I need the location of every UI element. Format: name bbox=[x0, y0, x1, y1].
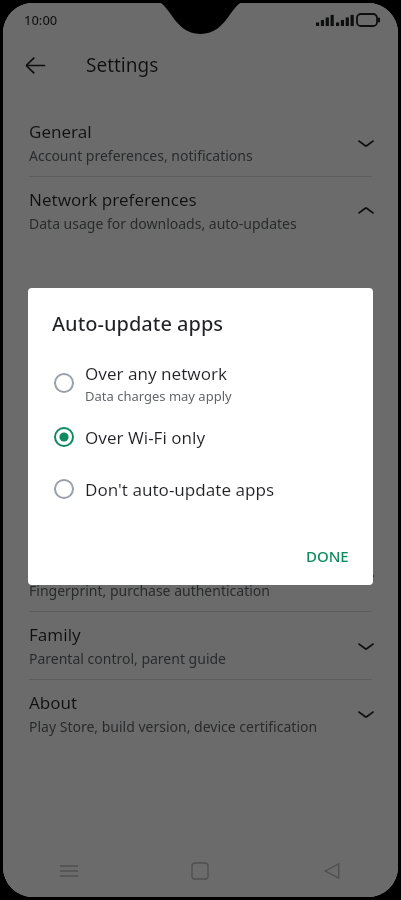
staticText: Data charges may apply bbox=[85, 387, 232, 405]
staticText: Over any network bbox=[85, 362, 228, 385]
button[interactable]: Family bbox=[3, 612, 398, 679]
button[interactable]: General bbox=[3, 109, 398, 176]
staticText: 10:00 bbox=[24, 11, 58, 29]
button[interactable]: Recents bbox=[3, 845, 134, 897]
button[interactable]: About bbox=[3, 680, 398, 747]
staticText: Auto-update apps bbox=[52, 310, 224, 337]
staticText: General bbox=[29, 120, 92, 143]
button[interactable]: Don't auto-update apps bbox=[28, 463, 373, 515]
button[interactable]: Over any network bbox=[28, 355, 373, 411]
staticText: Over Wi-Fi only bbox=[85, 426, 206, 449]
button[interactable]: Over Wi-Fi only bbox=[28, 411, 373, 463]
button[interactable]: Authentication bbox=[3, 544, 398, 611]
staticText: Data usage for downloads, auto-updates bbox=[29, 214, 297, 233]
staticText: Don't auto-update apps bbox=[85, 478, 275, 501]
button[interactable]: DONE bbox=[292, 537, 363, 575]
staticText: Network preferences bbox=[29, 188, 197, 211]
button[interactable]: Back bbox=[266, 845, 398, 897]
staticText: Parental control, parent guide bbox=[29, 649, 226, 668]
staticText: DONE bbox=[306, 546, 349, 566]
button[interactable]: Network preferences bbox=[3, 177, 398, 244]
staticText: Fingerprint, purchase authentication bbox=[29, 581, 270, 600]
staticText: Family bbox=[29, 623, 81, 646]
staticText: Account preferences, notifications bbox=[29, 146, 253, 165]
button[interactable]: Back bbox=[13, 43, 57, 87]
staticText: About bbox=[29, 691, 78, 714]
staticText: Play Store, build version, device certif… bbox=[29, 717, 318, 736]
staticText: Settings bbox=[86, 52, 159, 78]
